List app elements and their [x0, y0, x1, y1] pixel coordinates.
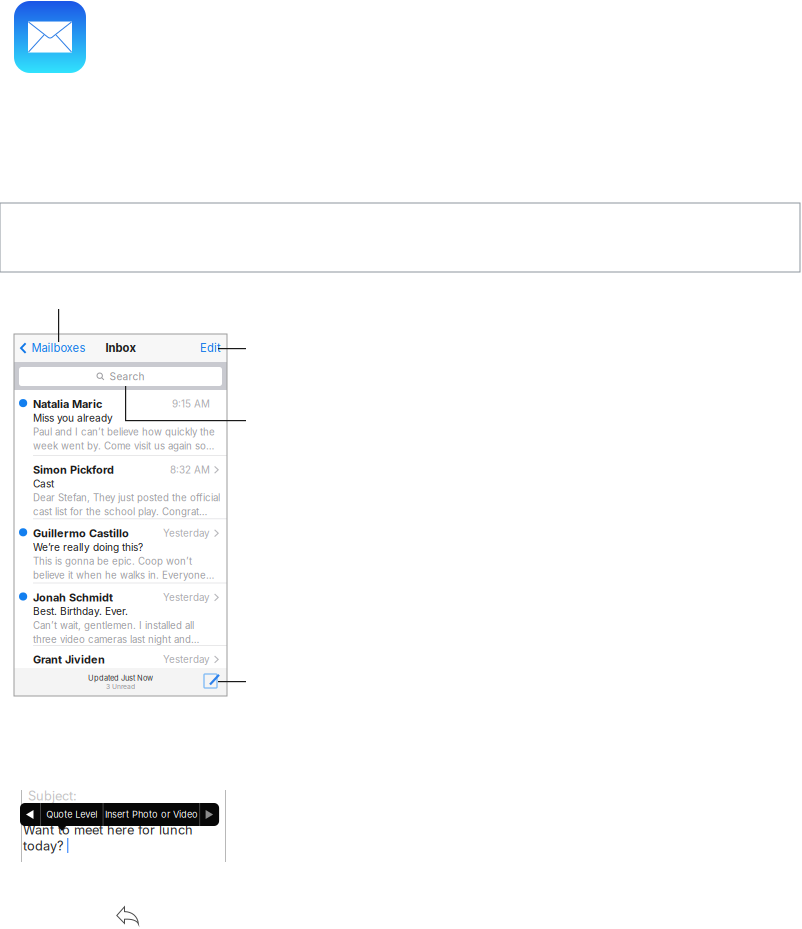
staticText: Mailboxes	[31, 341, 85, 355]
staticText: Grant Jividen	[33, 653, 105, 666]
staticText: Yesterday	[163, 591, 210, 603]
staticText: cast list for the school play. Congrat…	[33, 506, 207, 518]
staticText: Natalia Maric	[33, 397, 102, 411]
button[interactable]: Quote Level	[41, 803, 103, 826]
staticText: We’re really doing this?	[33, 541, 143, 553]
staticText: Yesterday	[163, 527, 210, 539]
staticText: Edit	[200, 341, 221, 355]
staticText: believe it when he walks in. Everyone…	[33, 569, 214, 581]
button[interactable]: Edit	[200, 341, 221, 355]
staticText: Insert Photo or Video	[105, 809, 198, 820]
staticText: Quote Level	[46, 809, 97, 820]
staticText: Inbox	[105, 341, 135, 355]
button[interactable]: Previous	[20, 803, 40, 826]
staticText: Jonah Schmidt	[33, 591, 113, 604]
staticText: Guillermo Castillo	[33, 527, 129, 540]
button[interactable]: Simon Pickford	[14, 456, 227, 518]
staticText: 8:32 AM	[170, 464, 210, 476]
button[interactable]: Natalia Maric	[14, 390, 227, 455]
staticText: Dear Stefan, They just posted the offici…	[33, 492, 220, 504]
staticText: Updated Just Now	[88, 673, 153, 682]
staticText: Simon Pickford	[33, 463, 114, 476]
staticText: Subject:	[28, 788, 77, 803]
button[interactable]: Mailboxes	[20, 341, 85, 355]
button[interactable]: Jonah Schmidt	[14, 583, 227, 645]
staticText: Miss you already	[33, 412, 113, 424]
staticText: today?	[23, 838, 64, 853]
button[interactable]: Compose	[204, 672, 224, 692]
button[interactable]: Next	[200, 803, 219, 826]
staticText: Cast	[33, 478, 54, 490]
staticText: Best. Birthday. Ever.	[33, 605, 128, 618]
staticText: This is gonna be epic. Coop won’t	[33, 555, 192, 567]
staticText: Can’t wait, gentlemen. I installed all	[33, 620, 194, 631]
staticText: Want to meet here for lunch	[23, 822, 193, 837]
staticText: 9:15 AM	[172, 398, 210, 410]
button[interactable]: Grant Jividen	[14, 646, 227, 667]
staticText: 3 Unread	[106, 682, 135, 691]
button[interactable]: Guillermo Castillo	[14, 519, 227, 583]
staticText: Paul and I can’t believe how quickly the	[33, 426, 215, 438]
staticText: Yesterday	[163, 653, 210, 665]
staticText: three video cameras last night and…	[33, 634, 199, 645]
staticText: Search	[109, 370, 144, 383]
button[interactable]: Insert Photo or Video	[103, 803, 199, 826]
button[interactable]: Search	[19, 367, 222, 386]
staticText: week went by. Come visit us again so…	[33, 440, 214, 452]
